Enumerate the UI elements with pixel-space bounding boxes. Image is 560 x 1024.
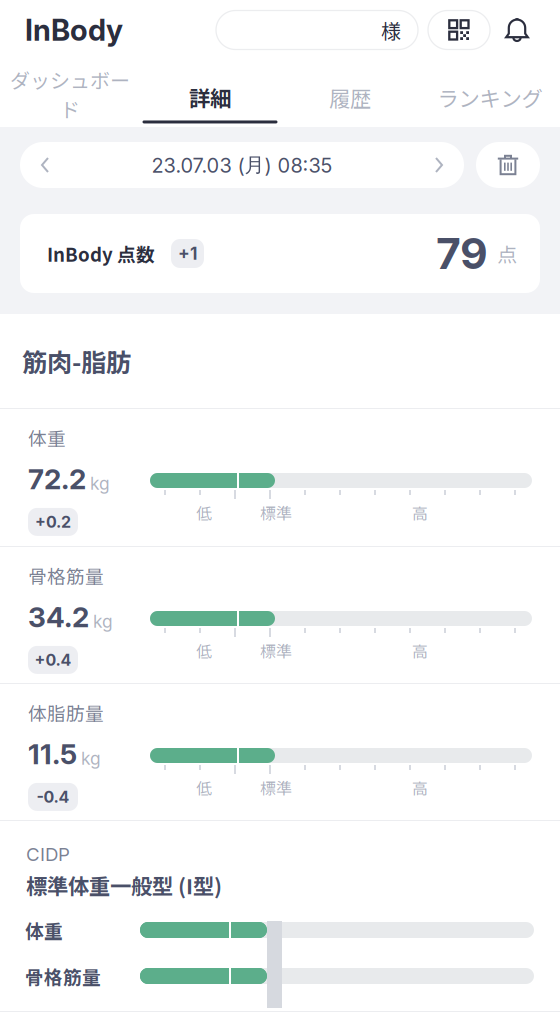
staticText: 低	[196, 639, 212, 662]
staticText: kg	[93, 611, 113, 632]
staticText: ド	[60, 94, 80, 123]
staticText: 標準	[260, 639, 292, 662]
staticText: -0.4	[36, 787, 69, 807]
button[interactable]: 23.07.03 (月) 08:35	[20, 142, 464, 188]
staticText: +0.2	[35, 512, 71, 532]
staticText: +1	[178, 243, 197, 264]
staticText: InBody	[25, 12, 123, 48]
staticText: 体重	[28, 424, 66, 451]
button[interactable]: Delete	[476, 142, 540, 188]
staticText: 高	[412, 639, 428, 662]
staticText: 骨格筋量	[28, 562, 104, 589]
staticText: 様	[381, 15, 401, 44]
staticText: 筋肉-脂肪	[22, 343, 131, 379]
button[interactable]: Notifications	[505, 17, 529, 43]
staticText: ダッシュボー	[10, 65, 130, 94]
staticText: 履歴	[329, 82, 371, 113]
staticText: 高	[412, 501, 428, 524]
staticText: 72.2	[28, 462, 86, 496]
staticText: 23.07.03 (月) 08:35	[151, 152, 332, 178]
staticText: 標準	[260, 776, 292, 799]
staticText: 低	[196, 501, 212, 524]
staticText: ランキング	[437, 82, 542, 113]
staticText: 体脂肪量	[28, 699, 104, 726]
staticText: kg	[90, 473, 110, 494]
staticText: 高	[412, 776, 428, 799]
staticText: 点	[497, 239, 517, 268]
button[interactable]: 様	[216, 10, 418, 49]
staticText: 標準体重一般型 (I型)	[26, 870, 222, 900]
button[interactable]: ランキング	[420, 60, 560, 127]
button[interactable]: QR code	[428, 10, 490, 49]
staticText: 体重	[25, 916, 63, 943]
button[interactable]: ダッシュボー	[0, 60, 140, 127]
button[interactable]: 履歴	[280, 60, 420, 127]
staticText: kg	[81, 748, 101, 769]
staticText: 34.2	[28, 600, 89, 634]
staticText: 標準	[260, 501, 292, 524]
staticText: 79	[436, 228, 488, 279]
staticText: 詳細	[189, 82, 231, 112]
staticText: 骨格筋量	[25, 962, 101, 989]
staticText: 低	[196, 776, 212, 799]
staticText: CIDP	[26, 843, 70, 866]
button[interactable]: 詳細	[140, 60, 280, 127]
staticText: +0.4	[34, 650, 71, 670]
staticText: 11.5	[28, 737, 77, 771]
staticText: InBody 点数	[47, 240, 155, 267]
